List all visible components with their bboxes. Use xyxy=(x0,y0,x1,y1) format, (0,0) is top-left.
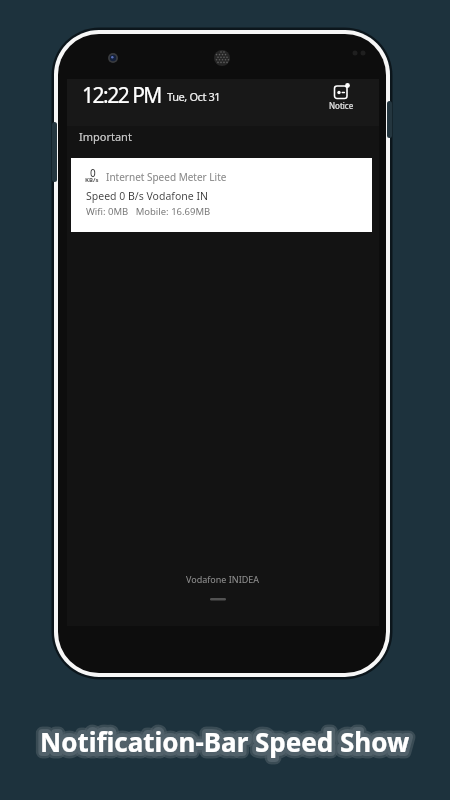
staticText: Tue, Oct 31 xyxy=(167,89,221,104)
button[interactable]: Notice xyxy=(322,83,360,113)
staticText: Vodafone INIDEA xyxy=(186,573,260,585)
staticText: 12:22 PM xyxy=(82,81,161,110)
staticText: 0 xyxy=(90,166,96,180)
staticText: Internet Speed Meter Lite xyxy=(106,170,227,184)
staticText: Wifi: 0MB Mobile: 16.69MB xyxy=(86,205,211,218)
staticText: Notice xyxy=(329,100,354,111)
staticText: Notification-Bar Speed Show xyxy=(40,724,410,759)
staticText: Speed 0 B/s Vodafone IN xyxy=(86,189,208,203)
staticText: Notification-Bar Speed Show xyxy=(40,724,410,759)
staticText: KB/s xyxy=(85,176,99,184)
button[interactable]: 0 xyxy=(71,158,372,232)
staticText: Important xyxy=(79,129,132,144)
staticText: Notification-Bar Speed Show xyxy=(40,724,410,759)
